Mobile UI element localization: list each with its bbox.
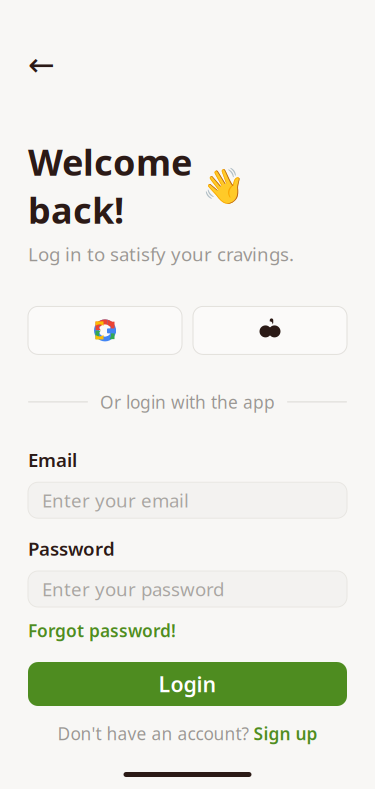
staticText: ← bbox=[28, 47, 55, 83]
staticText: Forgot password! bbox=[28, 619, 176, 642]
staticText: 👋 bbox=[202, 166, 245, 206]
staticText: Welcome back! bbox=[28, 138, 192, 234]
staticText: Login bbox=[158, 670, 216, 698]
staticText: Enter your email bbox=[42, 488, 189, 513]
staticText: Enter your password bbox=[42, 577, 224, 601]
staticText: Log in to satisfy your cravings. bbox=[28, 242, 294, 266]
button[interactable]: Sign in with Apple bbox=[193, 306, 347, 354]
button[interactable]: Sign in with Google bbox=[28, 306, 182, 354]
button[interactable]: Back bbox=[28, 47, 72, 83]
button[interactable]: Forgot password! bbox=[28, 619, 176, 642]
staticText: Password bbox=[28, 536, 115, 561]
button[interactable]: Don't have an account? bbox=[28, 722, 347, 745]
staticText: Or login with the app bbox=[100, 390, 275, 413]
staticText: Sign up bbox=[253, 722, 317, 745]
staticText: Don't have an account? bbox=[57, 722, 249, 745]
button[interactable]: Login bbox=[28, 662, 347, 706]
staticText: Email bbox=[28, 447, 77, 472]
